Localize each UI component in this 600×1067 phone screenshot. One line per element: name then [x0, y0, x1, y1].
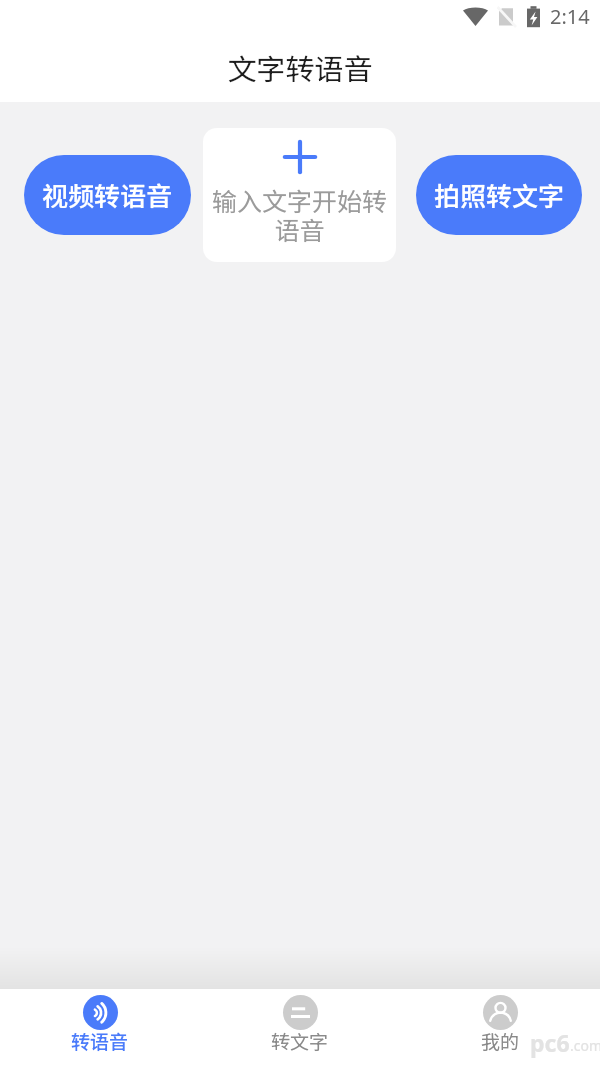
staticText: 2:14 [550, 3, 590, 30]
other: Text to speech [83, 995, 118, 1030]
button[interactable]: 视频转语音 [24, 155, 191, 235]
staticText: 拍照转文字 [434, 176, 565, 214]
button[interactable]: Profile [400, 989, 600, 1067]
staticText: 转语音 [71, 1027, 129, 1055]
button[interactable]: Text to speech [0, 989, 200, 1067]
staticText: 我的 [481, 1027, 520, 1055]
staticText: 转文字 [271, 1027, 329, 1055]
staticText: 输入文字开始转语音 [211, 182, 388, 247]
staticText: 文字转语音 [0, 46, 600, 88]
other: Speech to text [283, 995, 318, 1030]
staticText: .com [570, 1036, 600, 1055]
staticText: 视频转语音 [42, 176, 173, 214]
button[interactable]: 输入文字开始转语音 [203, 128, 396, 262]
other: Profile [483, 995, 518, 1030]
staticText: pc6 [530, 1027, 570, 1058]
button[interactable]: 拍照转文字 [416, 155, 582, 235]
button[interactable]: Speech to text [200, 989, 400, 1067]
